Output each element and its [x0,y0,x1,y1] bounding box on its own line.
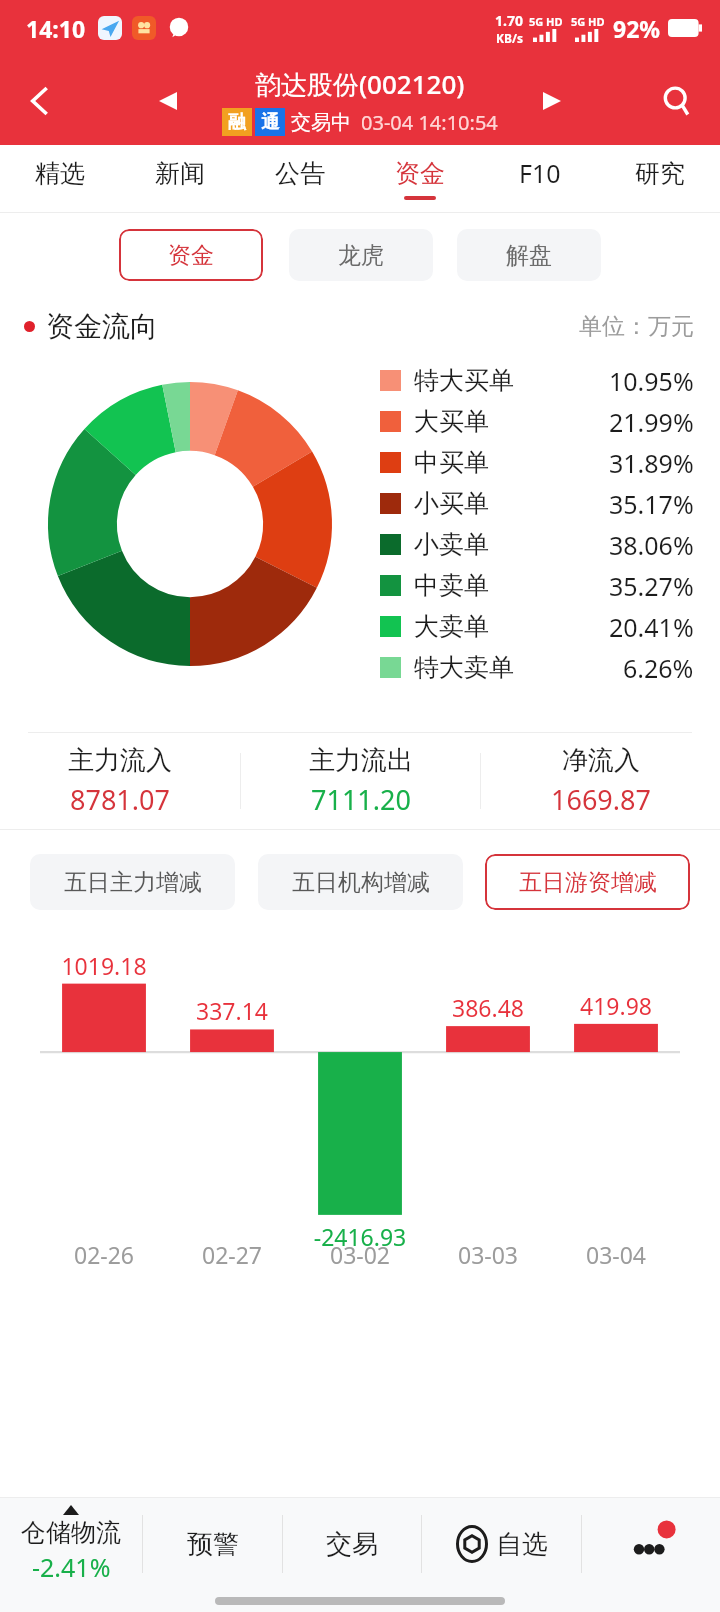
button[interactable]: More [582,1498,720,1590]
staticText: 5G HD [529,14,563,29]
staticText: 主力流入 [68,744,172,777]
staticText: 92% [613,13,661,44]
button[interactable]: 主力流入 [0,744,240,818]
staticText: 386.48 [424,992,552,1023]
staticText: 融 [228,111,246,134]
staticText: 35.17% [609,487,694,521]
button[interactable]: 交易 [283,1498,421,1590]
staticText: 交易中 [291,110,351,135]
staticText: 03-04 [586,1239,647,1270]
staticText: 公告 [275,158,325,189]
button[interactable]: 仓储物流 [0,1498,142,1590]
staticText: -2416.93 [296,1221,424,1252]
button[interactable]: 主力流出 [241,744,480,818]
button[interactable]: Search [648,72,706,130]
staticText: 韵达股份(002120) [255,66,465,102]
staticText: 通 [261,111,279,134]
staticText: 资金 [395,158,445,189]
staticText: 35.27% [609,569,694,603]
staticText: 五日机构增减 [292,868,430,897]
staticText: 03-04 14:10:54 [361,109,498,136]
staticText: 五日游资增减 [519,868,657,897]
staticText: 大买单 [414,406,489,437]
staticText: 02-26 [74,1239,135,1270]
staticText: 净流入 [562,744,640,777]
staticText: 研究 [635,158,685,189]
staticText: F10 [519,156,561,190]
staticText: 21.99% [609,405,694,439]
staticText: 大卖单 [414,611,489,642]
button[interactable]: 解盘 [457,229,601,281]
staticText: 主力流出 [309,744,413,777]
staticText: 精选 [35,158,85,189]
staticText: 龙虎 [338,241,384,270]
staticText: 单位：万元 [579,312,694,341]
button[interactable]: F10 [480,145,600,212]
staticText: KB/s [496,30,523,46]
button[interactable]: 资金 [119,229,263,281]
staticText: 自选 [496,1528,548,1561]
staticText: 7111.20 [311,781,411,818]
button[interactable]: 自选 [422,1498,581,1590]
staticText: 新闻 [155,158,205,189]
staticText: 10.95% [609,364,694,398]
staticText: 解盘 [506,241,552,270]
button[interactable]: 五日机构增减 [258,854,463,910]
button[interactable]: 资金 [360,145,480,212]
button[interactable]: Previous stock [145,78,191,124]
staticText: 20.41% [609,610,694,644]
staticText: 02-27 [202,1239,263,1270]
staticText: 8781.07 [70,781,170,818]
staticText: 中买单 [414,447,489,478]
button[interactable]: 龙虎 [289,229,433,281]
staticText: 1669.87 [551,781,651,818]
button[interactable]: 五日主力增减 [30,854,235,910]
staticText: 资金 [168,241,214,270]
staticText: 6.26% [623,651,694,685]
staticText: -2.41% [32,1550,111,1584]
button[interactable]: Next stock [529,78,575,124]
button[interactable]: 精选 [0,145,120,212]
button[interactable]: 净流入 [481,744,720,818]
button[interactable]: 新闻 [120,145,240,212]
button[interactable]: Back [12,72,70,130]
staticText: 预警 [187,1528,239,1561]
staticText: 38.06% [609,528,694,562]
staticText: 特大卖单 [414,652,514,683]
button[interactable]: 研究 [600,145,720,212]
staticText: 中卖单 [414,570,489,601]
staticText: 31.89% [609,446,694,480]
staticText: 小买单 [414,488,489,519]
staticText: 小卖单 [414,529,489,560]
staticText: 337.14 [168,995,296,1026]
staticText: 03-03 [458,1239,519,1270]
staticText: 仓储物流 [21,1517,121,1548]
staticText: 1.70 [495,11,523,30]
button[interactable]: 预警 [143,1498,282,1590]
staticText: 14:10 [26,13,86,44]
button[interactable]: 公告 [240,145,360,212]
staticText: 03-02 [330,1239,391,1270]
button[interactable]: 五日游资增减 [485,854,690,910]
staticText: 资金流向 [46,309,158,344]
staticText: 交易 [326,1528,378,1561]
staticText: 特大买单 [414,365,514,396]
staticText: 419.98 [552,990,680,1021]
staticText: 1019.18 [40,950,168,981]
staticText: 五日主力增减 [64,868,202,897]
staticText: 5G HD [571,14,605,29]
